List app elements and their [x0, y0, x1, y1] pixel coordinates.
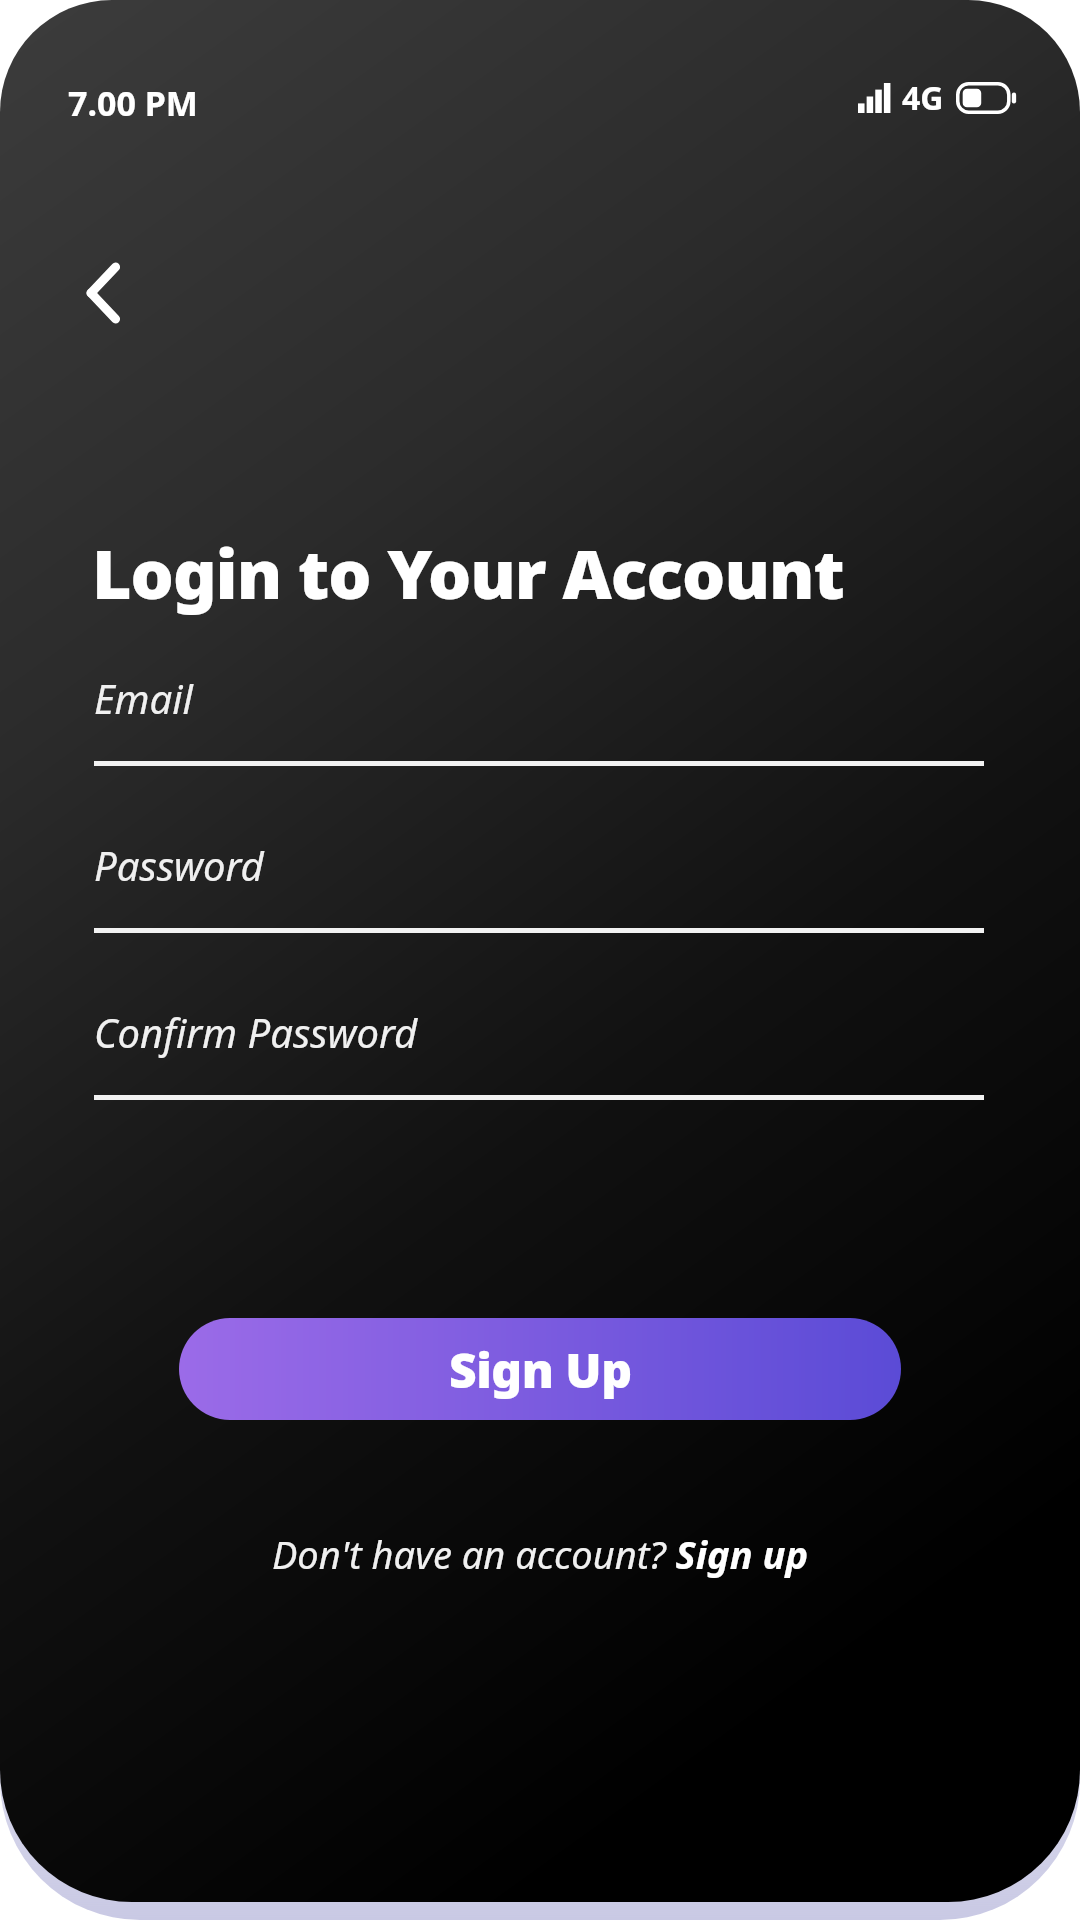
staticText: Email — [94, 671, 193, 725]
button[interactable]: Email — [94, 671, 984, 766]
button[interactable]: Confirm Password — [94, 1005, 984, 1100]
staticText: 7.00 PM — [68, 80, 198, 126]
staticText: 4G — [902, 76, 944, 120]
staticText: Confirm Password — [94, 1005, 418, 1059]
staticText: Don't have an account? Sign up — [272, 1528, 809, 1580]
staticText: Password — [94, 838, 264, 892]
staticText: Login to Your Account — [92, 526, 844, 619]
button[interactable]: Don't have an account? Sign up — [248, 1516, 833, 1592]
button[interactable]: Back — [58, 248, 148, 338]
button[interactable]: Password — [94, 838, 984, 933]
button[interactable]: Sign Up — [179, 1318, 901, 1420]
staticText: Sign Up — [449, 1337, 632, 1402]
